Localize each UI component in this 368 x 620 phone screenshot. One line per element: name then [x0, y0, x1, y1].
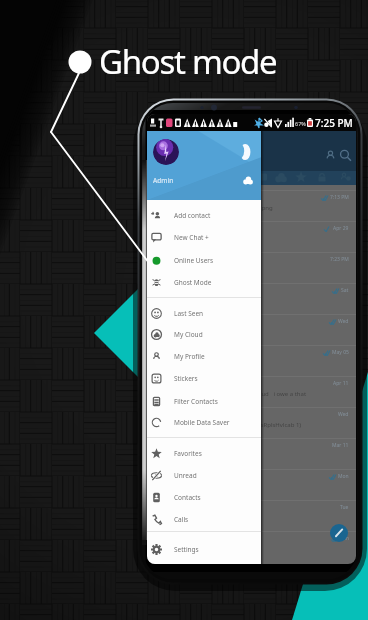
button[interactable]: Favorites [147, 442, 261, 464]
staticText: Wed [338, 318, 349, 325]
staticText: Ghost Mode [174, 278, 212, 287]
button[interactable]: Filter Contacts [147, 390, 261, 412]
button[interactable]: Tab 1 [257, 171, 269, 183]
staticText: Unread [174, 471, 197, 480]
staticText: Sam: hey check this out Rv tfCFgnHbTrsRp… [151, 421, 302, 429]
button[interactable]: Contacts [324, 149, 337, 162]
button[interactable]: New message [330, 524, 348, 542]
staticText: Mon [338, 473, 349, 480]
staticText: Mum: ok thanks i will call you bom a mud… [151, 390, 307, 398]
button[interactable]: Stickers [147, 367, 261, 389]
button[interactable]: My Profile [147, 345, 261, 367]
button[interactable]: May 05 [147, 345, 356, 376]
staticText: Apr 29 [333, 225, 349, 232]
staticText: You: Screenshot_2020_04_29_19_23_11.png [151, 204, 273, 212]
staticText: Calls [174, 515, 189, 524]
staticText: Ghost mode [99, 39, 277, 84]
button[interactable]: Unread [147, 464, 261, 486]
button[interactable]: Tab 2 [275, 171, 287, 183]
button[interactable]: Last Seen [147, 302, 261, 324]
button[interactable]: Apr 11 [147, 376, 356, 407]
button[interactable]: Sat [147, 283, 356, 314]
button[interactable]: Settings [147, 538, 261, 560]
staticText: 7:13 PM [330, 194, 349, 201]
button[interactable]: New Chat + [147, 226, 261, 248]
button[interactable]: Cloud [243, 175, 253, 185]
staticText: May 05 [332, 349, 349, 356]
staticText: Favorites [174, 449, 202, 458]
staticText: Stickers [174, 374, 198, 383]
button[interactable]: Mon [147, 469, 356, 500]
staticText: Filter Contacts [174, 397, 218, 406]
staticText: My Cloud [174, 330, 203, 339]
button[interactable]: Online Users [147, 249, 261, 271]
button[interactable]: Tab 4 [316, 171, 328, 183]
staticText: Admin [153, 176, 174, 185]
button[interactable]: Ghost Mode [147, 271, 261, 293]
button[interactable]: 7:23 PM [147, 252, 356, 283]
staticText: 67% [295, 120, 306, 127]
staticText: Contacts [174, 493, 201, 502]
button[interactable]: Tab 3 [295, 171, 307, 183]
button[interactable]: Sun [147, 531, 356, 562]
button[interactable]: 7:13 PM [147, 190, 356, 221]
staticText: Last Seen [174, 309, 204, 318]
button[interactable]: Wed [147, 407, 356, 438]
button[interactable]: Mar 11 [147, 438, 356, 469]
button[interactable]: Profile photo [153, 139, 179, 165]
button[interactable]: Search [339, 149, 352, 162]
button[interactable]: Tue [147, 500, 356, 531]
staticText: Online Users [174, 256, 214, 265]
button[interactable]: Apr 29 [147, 221, 356, 252]
staticText: New Chat + [174, 233, 209, 242]
button[interactable]: Tab 5 [338, 171, 350, 183]
staticText: 7:23 PM [330, 256, 349, 263]
staticText: Sun [340, 535, 349, 542]
staticText: Settings [174, 545, 199, 554]
staticText: 7:25 PM [315, 116, 353, 130]
staticText: Mar 11 [332, 442, 349, 449]
button[interactable]: Calls [147, 508, 261, 530]
staticText: Sat [341, 287, 349, 294]
button[interactable]: My Cloud [147, 323, 261, 345]
staticText: Wed [338, 411, 349, 418]
staticText: My Profile [174, 352, 205, 361]
button[interactable]: Contacts [147, 486, 261, 508]
staticText: Apr 11 [333, 380, 349, 387]
button[interactable]: Add contact [147, 204, 261, 226]
button[interactable]: Mobile Data Saver [147, 411, 261, 433]
staticText: Tue [340, 504, 349, 511]
button[interactable]: Wed [147, 314, 356, 345]
button[interactable]: Night mode [239, 143, 252, 161]
staticText: Mobile Data Saver [174, 418, 230, 427]
staticText: Add contact [174, 211, 211, 220]
